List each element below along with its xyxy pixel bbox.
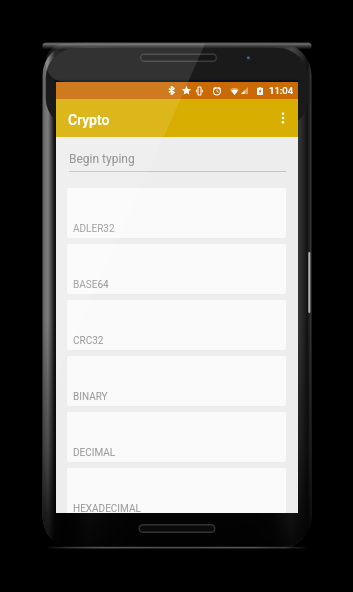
button[interactable]: DECIMAL bbox=[67, 412, 286, 462]
staticText: Crypto bbox=[68, 112, 110, 128]
button[interactable]: Begin typing bbox=[56, 137, 298, 188]
button[interactable]: HEXADECIMAL bbox=[67, 468, 286, 513]
button[interactable]: More options bbox=[268, 103, 298, 133]
staticText: DECIMAL bbox=[73, 447, 116, 459]
staticText: ADLER32 bbox=[73, 223, 115, 235]
button[interactable]: BASE64 bbox=[67, 244, 286, 294]
staticText: BINARY bbox=[73, 391, 108, 403]
button[interactable]: BINARY bbox=[67, 356, 286, 406]
staticText: 11:04 bbox=[269, 85, 294, 96]
staticText: BASE64 bbox=[73, 279, 109, 291]
staticText: HEXADECIMAL bbox=[73, 503, 141, 513]
button[interactable]: ADLER32 bbox=[67, 188, 286, 238]
button[interactable]: CRC32 bbox=[67, 300, 286, 350]
staticText: CRC32 bbox=[73, 335, 104, 347]
staticText: Begin typing bbox=[69, 152, 135, 166]
